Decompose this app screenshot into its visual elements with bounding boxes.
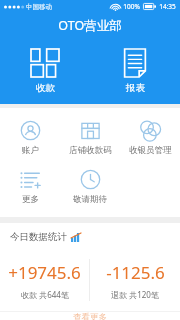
staticText: 中国移动 [26, 3, 52, 11]
staticText: 收银员管理 [129, 145, 172, 156]
staticText: 报表 [126, 82, 145, 94]
staticText: 今日数据统计 [10, 231, 67, 243]
staticText: 账户 [22, 145, 39, 156]
staticText: 查看更多 [73, 312, 107, 320]
staticText: 退款 共120笔 [111, 289, 159, 300]
button[interactable]: 收银员管理 [120, 117, 180, 159]
button[interactable]: +19745.6 [0, 261, 89, 300]
staticText: 14:35 [159, 2, 176, 11]
button[interactable]: 查看更多 [0, 312, 180, 320]
button[interactable]: 更多 [0, 166, 60, 208]
button[interactable]: 敬请期待 [60, 166, 120, 208]
staticText: 收款 共644笔 [21, 289, 69, 300]
button[interactable]: -1125.6 [90, 261, 180, 300]
button[interactable]: 店铺收款码 [60, 117, 120, 159]
staticText: 收款 [36, 82, 55, 94]
button[interactable]: 账户 [0, 117, 60, 159]
staticText: OTO营业部 [58, 17, 122, 34]
staticText: -1125.6 [106, 261, 165, 284]
button[interactable]: 报表 [90, 45, 180, 98]
staticText: 100% [123, 2, 140, 11]
staticText: 更多 [22, 194, 39, 205]
staticText: 敬请期待 [73, 194, 107, 205]
staticText: 店铺收款码 [69, 145, 112, 156]
button[interactable]: 收款 [0, 45, 90, 98]
staticText: +19745.6 [8, 261, 81, 284]
